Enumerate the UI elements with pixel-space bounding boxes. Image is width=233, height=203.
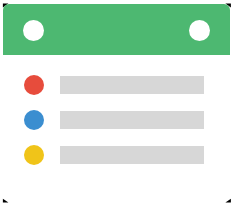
button[interactable]: More options [189, 20, 210, 41]
button[interactable]: Starred [0, 110, 233, 130]
button[interactable]: Inbox [0, 75, 233, 95]
button[interactable]: Drafts [0, 145, 233, 165]
button[interactable]: Open navigation menu [23, 20, 44, 41]
